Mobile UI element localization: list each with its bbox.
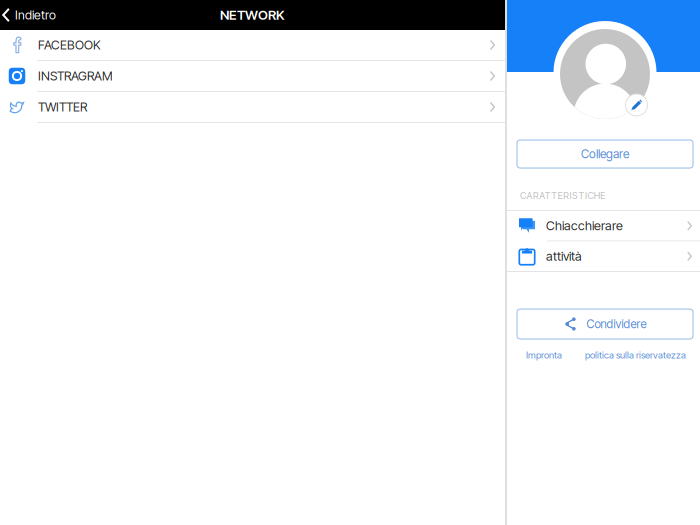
staticText: politica sulla riservatezza — [585, 349, 686, 361]
staticText: Impronta — [526, 349, 562, 361]
staticText: Collegare — [581, 147, 629, 161]
button[interactable]: Modifica foto profilo — [625, 94, 647, 116]
button[interactable]: Indietro — [0, 0, 64, 30]
button[interactable]: politica sulla riservatezza — [585, 349, 686, 361]
staticText: Condividere — [586, 317, 646, 331]
button[interactable]: Impronta — [526, 349, 562, 361]
staticText: NETWORK — [220, 7, 285, 23]
button[interactable]: Chiacchierare — [507, 211, 700, 240]
button[interactable]: INSTRAGRAM — [0, 61, 505, 92]
button[interactable]: FACEBOOK — [0, 30, 505, 61]
button[interactable]: attività — [507, 241, 700, 271]
button[interactable]: TWITTER — [0, 92, 505, 123]
staticText: Chiacchierare — [546, 218, 623, 233]
staticText: attività — [546, 249, 582, 264]
staticText: Indietro — [15, 7, 56, 22]
button[interactable]: Condividere — [517, 309, 693, 339]
staticText: INSTRAGRAM — [38, 68, 113, 84]
button[interactable]: Collegare — [517, 140, 693, 168]
staticText: TWITTER — [38, 99, 87, 115]
staticText: FACEBOOK — [38, 37, 101, 53]
staticText: CARATTERISTICHE — [520, 190, 605, 201]
